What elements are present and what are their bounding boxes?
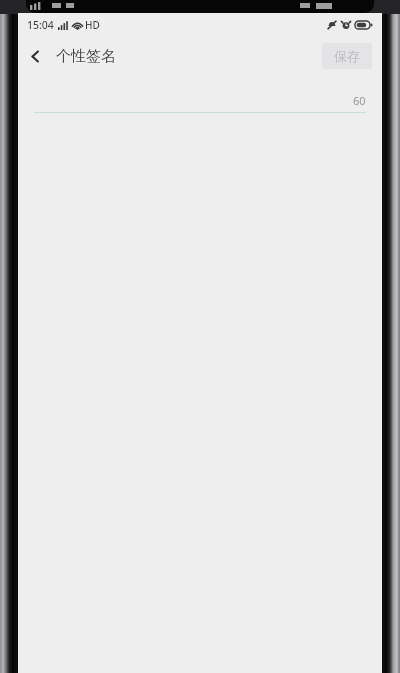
staticText: 个性签名 — [56, 47, 116, 66]
staticText: 保存 — [334, 48, 360, 64]
staticText: 15:04 — [27, 18, 54, 32]
button[interactable]: 保存 — [322, 43, 372, 69]
staticText: 60 — [353, 93, 366, 108]
staticText: HD — [85, 18, 100, 32]
button[interactable]: Back — [18, 37, 51, 75]
